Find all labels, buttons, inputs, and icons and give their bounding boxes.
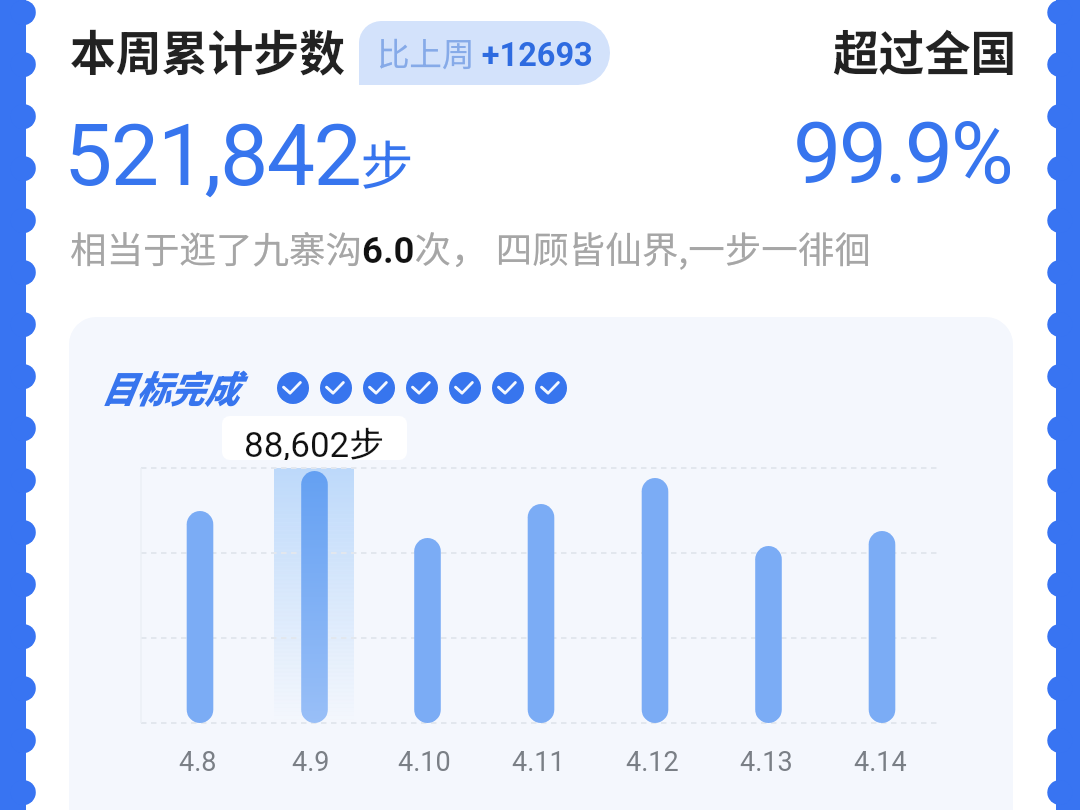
staticText: 比上周 +12693 — [377, 28, 593, 75]
staticText: 相当于逛了九寨沟6.0次， 四顾皆仙界,一步一徘徊 — [70, 221, 871, 274]
button[interactable]: 4.9 — [254, 746, 367, 778]
button[interactable]: 4.13 — [709, 746, 823, 778]
staticText: 88,602步 — [244, 416, 385, 460]
button[interactable]: 4.12 — [595, 746, 709, 778]
button[interactable]: Steps on 4.11 — [481, 468, 595, 723]
button[interactable]: Goal day 3 completed — [363, 372, 395, 404]
button[interactable]: Goal day 6 completed — [492, 372, 524, 404]
button[interactable]: Steps on 4.12 — [595, 468, 709, 723]
button[interactable]: 4.10 — [367, 746, 481, 778]
staticText: 4.10 — [398, 746, 451, 778]
staticText: 4.13 — [740, 746, 793, 778]
staticText: 超过全国 — [833, 14, 1016, 84]
button[interactable]: 4.14 — [823, 746, 937, 778]
button[interactable]: 4.11 — [481, 746, 595, 778]
staticText: 4.12 — [626, 746, 679, 778]
button[interactable]: Steps on 4.10 — [367, 468, 481, 723]
button[interactable]: 4.8 — [141, 746, 254, 778]
staticText: 本周累计步数 — [70, 14, 345, 84]
staticText: 4.11 — [512, 746, 565, 778]
button[interactable]: Goal day 1 completed — [277, 372, 309, 404]
staticText: 4.8 — [179, 746, 217, 778]
staticText: 99.9% — [793, 103, 1012, 204]
staticText: 4.14 — [854, 746, 907, 778]
staticText: 521,842步 — [64, 105, 414, 206]
staticText: 目标完成 — [101, 360, 239, 414]
button[interactable]: Steps on 4.9 — [254, 468, 367, 723]
button[interactable]: 比上周 +12693 — [359, 21, 610, 85]
button[interactable]: Steps on 4.13 — [709, 468, 823, 723]
button[interactable]: Steps on 4.14 — [823, 468, 937, 723]
button[interactable]: Goal day 2 completed — [320, 372, 352, 404]
button[interactable]: Goal day 4 completed — [406, 372, 438, 404]
staticText: 4.9 — [292, 746, 330, 778]
button[interactable]: Goal day 5 completed — [449, 372, 481, 404]
button[interactable]: Goal day 7 completed — [535, 372, 567, 404]
button[interactable]: Steps on 4.8 — [141, 468, 254, 723]
